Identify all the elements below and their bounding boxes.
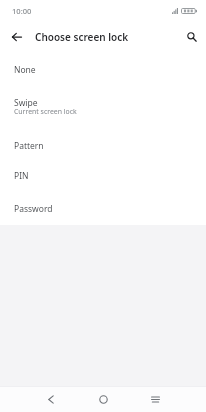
button[interactable]: Swipe [0,86,206,131]
button[interactable]: Home [91,387,115,411]
staticText: Pattern [14,140,44,152]
button[interactable]: None [0,53,206,86]
button[interactable]: Back [6,26,27,47]
staticText: Password [14,203,53,215]
staticText: None [14,64,36,76]
button[interactable]: Pattern [0,131,206,161]
button[interactable]: Password [0,192,206,225]
button[interactable]: PIN [0,160,206,191]
staticText: 10:00 [12,6,32,16]
staticText: Choose screen lock [35,30,129,44]
staticText: Current screen lock [14,107,77,116]
button[interactable]: Search [181,26,202,47]
staticText: PIN [14,170,29,182]
staticText: Swipe [14,97,38,109]
button[interactable]: Back [39,387,63,411]
button[interactable]: Recent apps [143,387,167,411]
